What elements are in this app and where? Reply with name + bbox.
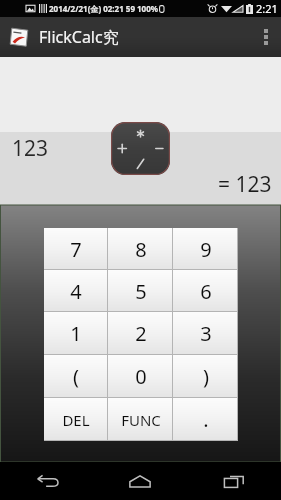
staticText: 9 bbox=[200, 236, 212, 263]
button[interactable]: 5 bbox=[108, 270, 173, 312]
button[interactable]: Back bbox=[0, 462, 93, 500]
button[interactable]: Recent apps bbox=[187, 462, 281, 500]
button[interactable]: 4 bbox=[44, 270, 108, 312]
staticText: DEL bbox=[62, 410, 90, 430]
staticText: 4 bbox=[70, 278, 82, 305]
staticText: 2014/2/21(金) 02:21 59 100% bbox=[49, 3, 158, 14]
staticText: 123 bbox=[12, 134, 49, 163]
button[interactable]: 8 bbox=[108, 228, 173, 270]
button[interactable]: 2 bbox=[108, 312, 173, 355]
staticText: 2 bbox=[135, 320, 147, 347]
staticText: . bbox=[203, 406, 209, 433]
staticText: 6 bbox=[200, 278, 212, 305]
button[interactable]: 1 bbox=[44, 312, 108, 355]
button[interactable]: 3 bbox=[173, 312, 238, 355]
staticText: ( bbox=[73, 363, 79, 390]
button[interactable]: ) bbox=[173, 355, 238, 398]
button[interactable]: Operator flick pad bbox=[111, 122, 170, 175]
staticText: 3 bbox=[200, 320, 212, 347]
staticText: 7 bbox=[70, 236, 82, 263]
staticText: 0 bbox=[135, 363, 147, 390]
button[interactable]: . bbox=[173, 398, 238, 441]
staticText: 5 bbox=[135, 278, 147, 305]
button[interactable]: DEL bbox=[44, 398, 108, 441]
staticText: = 123 bbox=[218, 170, 272, 199]
button[interactable]: 0 bbox=[108, 355, 173, 398]
button[interactable]: 6 bbox=[173, 270, 238, 312]
staticText: FUNC bbox=[121, 410, 161, 430]
button[interactable]: 7 bbox=[44, 228, 108, 270]
button[interactable]: Home bbox=[93, 462, 187, 500]
staticText: 8 bbox=[135, 236, 147, 263]
staticText: FlickCalc究 bbox=[39, 26, 119, 48]
button[interactable]: More options bbox=[251, 17, 281, 57]
staticText: 2:21 bbox=[256, 1, 278, 16]
button[interactable]: ( bbox=[44, 355, 108, 398]
staticText: ) bbox=[203, 363, 209, 390]
button[interactable]: 9 bbox=[173, 228, 238, 270]
staticText: 1 bbox=[70, 320, 82, 347]
button[interactable]: FUNC bbox=[108, 398, 173, 441]
